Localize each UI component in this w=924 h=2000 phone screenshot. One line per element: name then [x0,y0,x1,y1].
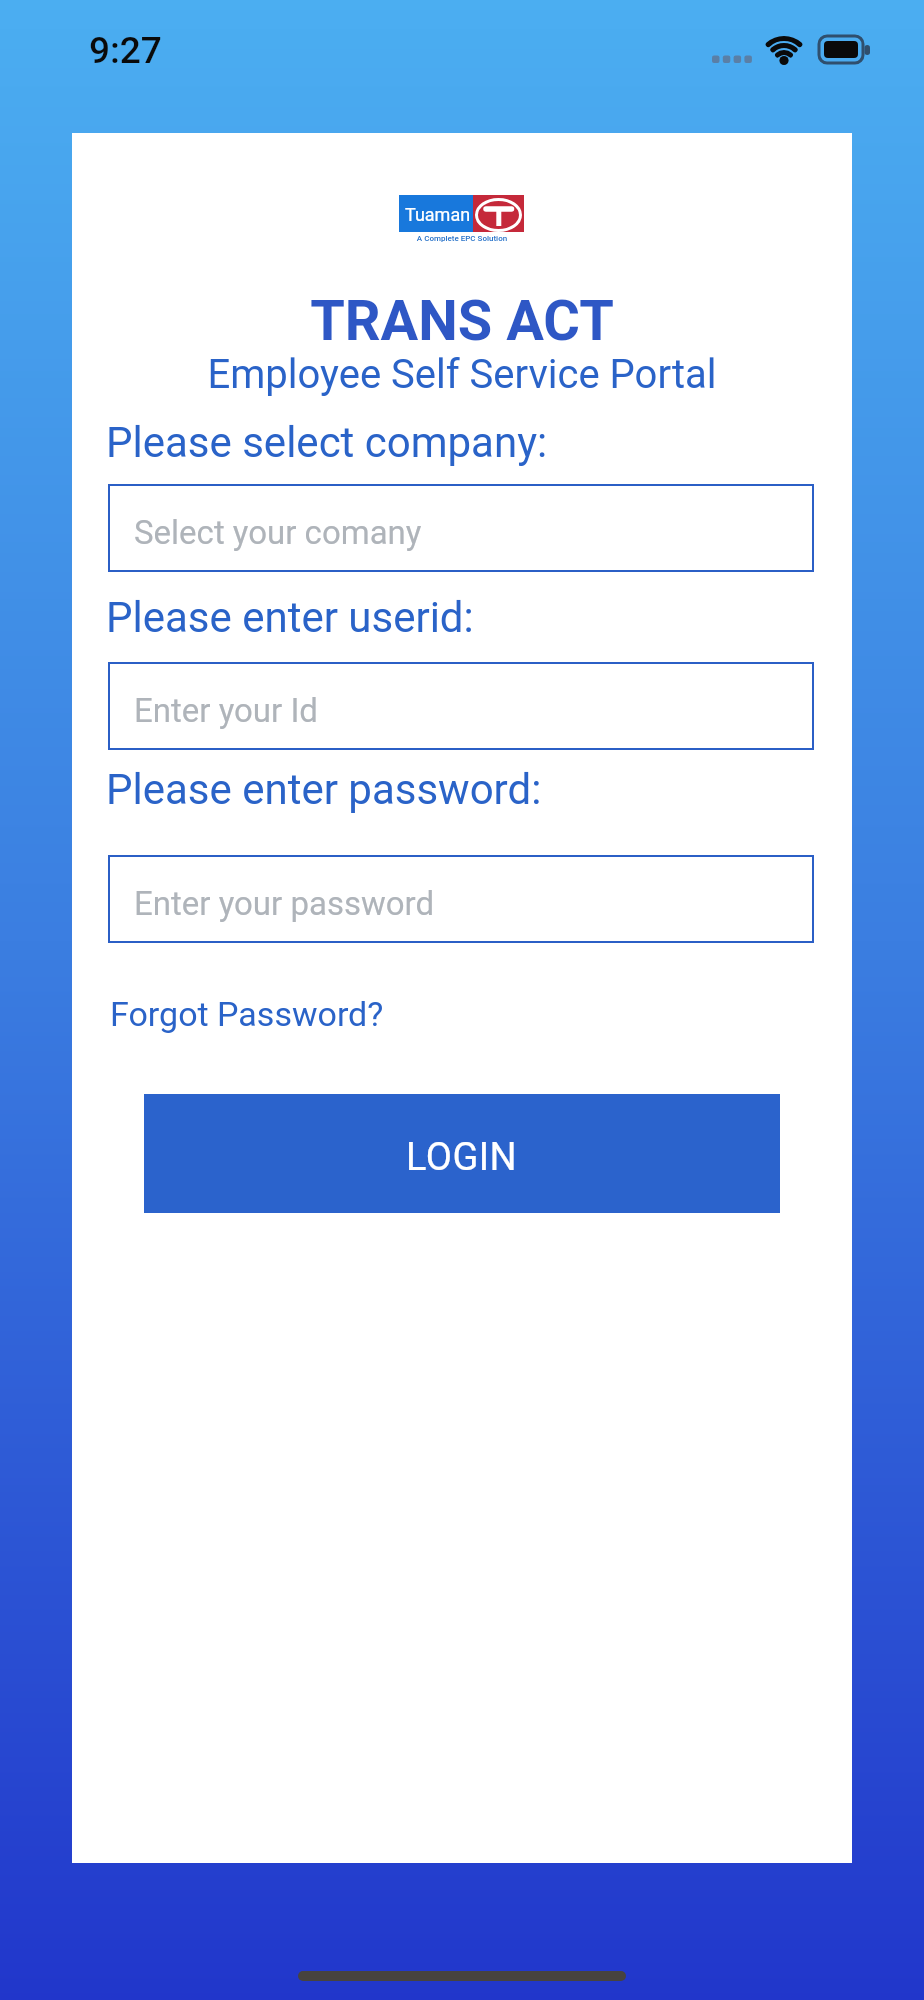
staticText: Select your comany [134,513,422,552]
staticText: TRANS ACT [72,288,852,354]
staticText: Please select company: [106,418,548,467]
staticText: Enter your password [134,884,435,923]
staticText: Forgot Password? [110,994,384,1034]
button[interactable]: Enter your password [108,855,814,943]
staticText: LOGIN [406,1135,518,1180]
button[interactable]: Enter your Id [108,662,814,750]
button[interactable]: Select your comany [108,484,814,572]
button[interactable]: Forgot Password? [110,994,384,1034]
button[interactable]: LOGIN [144,1094,780,1213]
staticText: Enter your Id [134,691,318,730]
staticText: Please enter userid: [106,593,474,642]
staticText: Tuaman [405,204,471,225]
staticText: Please enter password: [106,765,542,814]
staticText: A Complete EPC Solution [72,234,852,243]
staticText: 9:27 [89,29,162,72]
staticText: Employee Self Service Portal [72,351,852,398]
